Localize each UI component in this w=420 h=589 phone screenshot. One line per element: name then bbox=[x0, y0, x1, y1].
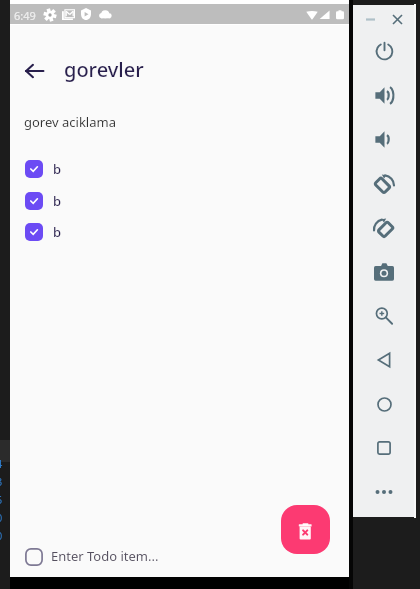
button[interactable]: Power bbox=[362, 29, 406, 73]
staticText: gorevler bbox=[64, 56, 144, 83]
staticText: b bbox=[53, 223, 62, 241]
button[interactable]: More bbox=[362, 470, 406, 514]
staticText: Enter Todo item... bbox=[51, 547, 159, 565]
button[interactable]: Todo item checked bbox=[25, 223, 43, 241]
button[interactable]: Volume down bbox=[362, 117, 406, 161]
staticText: b bbox=[53, 192, 62, 210]
button[interactable]: Delete bbox=[281, 505, 330, 554]
staticText: 4 bbox=[0, 456, 3, 468]
button[interactable]: Close bbox=[387, 9, 407, 29]
staticText: 0 bbox=[0, 528, 3, 540]
button[interactable]: Back bbox=[362, 338, 406, 382]
button[interactable]: Toggle new todo bbox=[25, 548, 43, 566]
button[interactable]: Rotate right bbox=[362, 205, 406, 249]
staticText: gorev aciklama bbox=[24, 113, 116, 131]
button[interactable]: Recents bbox=[362, 426, 406, 470]
button[interactable]: Rotate left bbox=[362, 161, 406, 205]
button[interactable]: Todo item checked bbox=[25, 192, 43, 210]
button[interactable]: Volume up bbox=[362, 73, 406, 117]
staticText: 0 bbox=[0, 510, 3, 522]
button[interactable]: Home bbox=[362, 382, 406, 426]
button[interactable]: Back bbox=[22, 59, 46, 83]
staticText: 3 bbox=[0, 474, 3, 486]
button[interactable]: Todo item checked bbox=[25, 160, 43, 178]
staticText: 5 bbox=[0, 492, 3, 504]
staticText: b bbox=[53, 160, 62, 178]
button[interactable]: Screenshot bbox=[362, 250, 406, 294]
button[interactable]: Minimize bbox=[360, 9, 380, 29]
staticText: 6:49 bbox=[14, 8, 36, 20]
button[interactable]: Zoom bbox=[362, 294, 406, 338]
